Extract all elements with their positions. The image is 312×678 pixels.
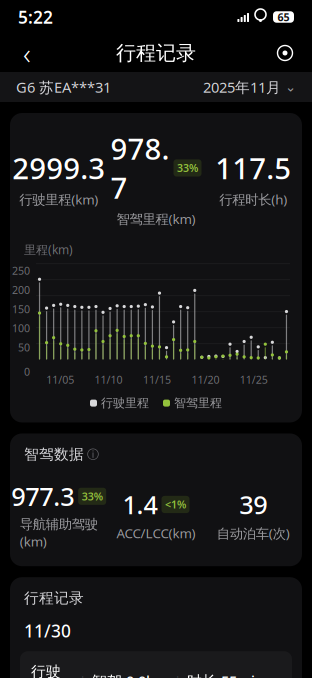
- staticText: 行驶里程(km): [19, 190, 98, 208]
- staticText: 智驾 0.0km: [92, 671, 168, 678]
- staticText: ⌄: [281, 79, 296, 94]
- staticText: 200: [12, 283, 30, 297]
- staticText: 智驾数据: [24, 445, 84, 463]
- staticText: 11/25: [240, 372, 268, 387]
- staticText: 11/30: [24, 619, 71, 642]
- staticText: 977.3: [11, 479, 74, 513]
- staticText: 2999.3: [12, 148, 105, 187]
- staticText: 里程(km): [24, 242, 73, 257]
- button[interactable]: G6 苏EA***31: [0, 72, 312, 102]
- staticText: 150: [12, 302, 30, 316]
- staticText: 0: [24, 365, 30, 379]
- staticText: ACC/LCC(km): [116, 524, 195, 542]
- staticText: 100: [12, 321, 30, 335]
- staticText: 117.5: [215, 148, 291, 187]
- staticText: 11/20: [191, 372, 219, 387]
- staticText: 65: [277, 10, 289, 24]
- staticText: 250: [12, 263, 30, 278]
- staticText: 行程记录: [116, 41, 196, 65]
- staticText: 39: [239, 488, 267, 521]
- staticText: 导航辅助驾驶(km): [20, 516, 98, 550]
- button[interactable]: Back: [10, 36, 44, 70]
- staticText: 智驾里程: [174, 396, 222, 410]
- staticText: 行程记录: [24, 589, 84, 607]
- staticText: 行驶里程: [101, 396, 149, 410]
- staticText: |: [168, 672, 187, 678]
- staticText: G6 苏EA***31: [16, 77, 111, 97]
- staticText: 时长 55min: [187, 671, 264, 678]
- staticText: 33%: [177, 161, 198, 175]
- staticText: 11/15: [143, 372, 171, 387]
- staticText: 1.4: [122, 488, 157, 521]
- staticText: 自动泊车(次): [217, 524, 290, 542]
- button[interactable]: 行驶 9.5km: [20, 651, 292, 678]
- staticText: |: [73, 672, 92, 678]
- staticText: 50: [18, 340, 30, 354]
- staticText: 行程时长(h): [219, 190, 287, 208]
- staticText: 5:22: [18, 5, 53, 28]
- staticText: 11/10: [95, 372, 123, 387]
- staticText: 978.7: [110, 129, 169, 207]
- staticText: 行驶 9.5km: [31, 661, 73, 678]
- button[interactable]: Settings: [268, 36, 302, 70]
- staticText: 11/05: [46, 372, 74, 387]
- staticText: <1%: [165, 497, 186, 512]
- staticText: ‹: [23, 33, 31, 72]
- staticText: ⓘ: [87, 447, 99, 462]
- staticText: 33%: [82, 489, 103, 503]
- staticText: 智驾里程(km): [116, 210, 195, 228]
- staticText: 2025年11月: [203, 77, 281, 97]
